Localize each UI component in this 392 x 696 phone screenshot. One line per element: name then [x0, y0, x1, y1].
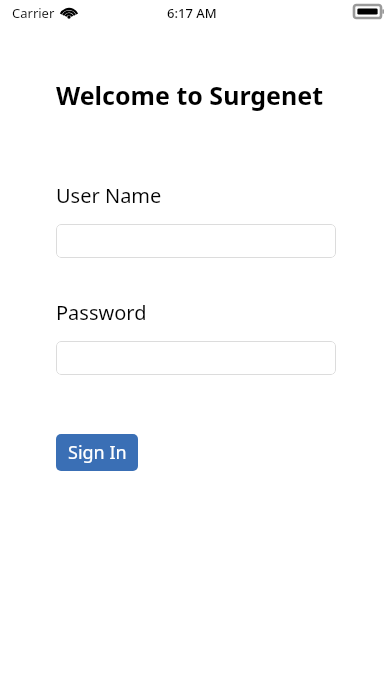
- staticText: 6:17 AM: [167, 4, 217, 22]
- button[interactable]: Sign In: [56, 434, 138, 471]
- staticText: Sign In: [68, 440, 127, 465]
- staticText: Welcome to Surgenet: [56, 78, 324, 112]
- staticText: User Name: [56, 182, 162, 209]
- other: Wi-Fi signal: [60, 5, 78, 19]
- other: Battery full: [354, 5, 384, 18]
- staticText: Password: [56, 299, 147, 326]
- button[interactable]: Password input field: [56, 341, 336, 375]
- staticText: Carrier: [12, 4, 55, 22]
- button[interactable]: User Name input field: [56, 224, 336, 258]
